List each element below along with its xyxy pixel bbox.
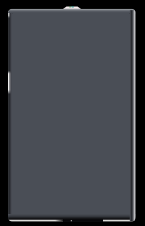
button[interactable]: Phone device preview xyxy=(0,0,145,226)
